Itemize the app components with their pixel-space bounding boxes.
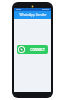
other: WhatsApp (18, 46, 25, 53)
staticText: CONNECT (30, 48, 45, 52)
button[interactable]: WhatsApp Sender (14, 11, 51, 19)
button[interactable]: WhatsApp (17, 45, 48, 54)
staticText: WhatsApp Sender (19, 13, 47, 17)
